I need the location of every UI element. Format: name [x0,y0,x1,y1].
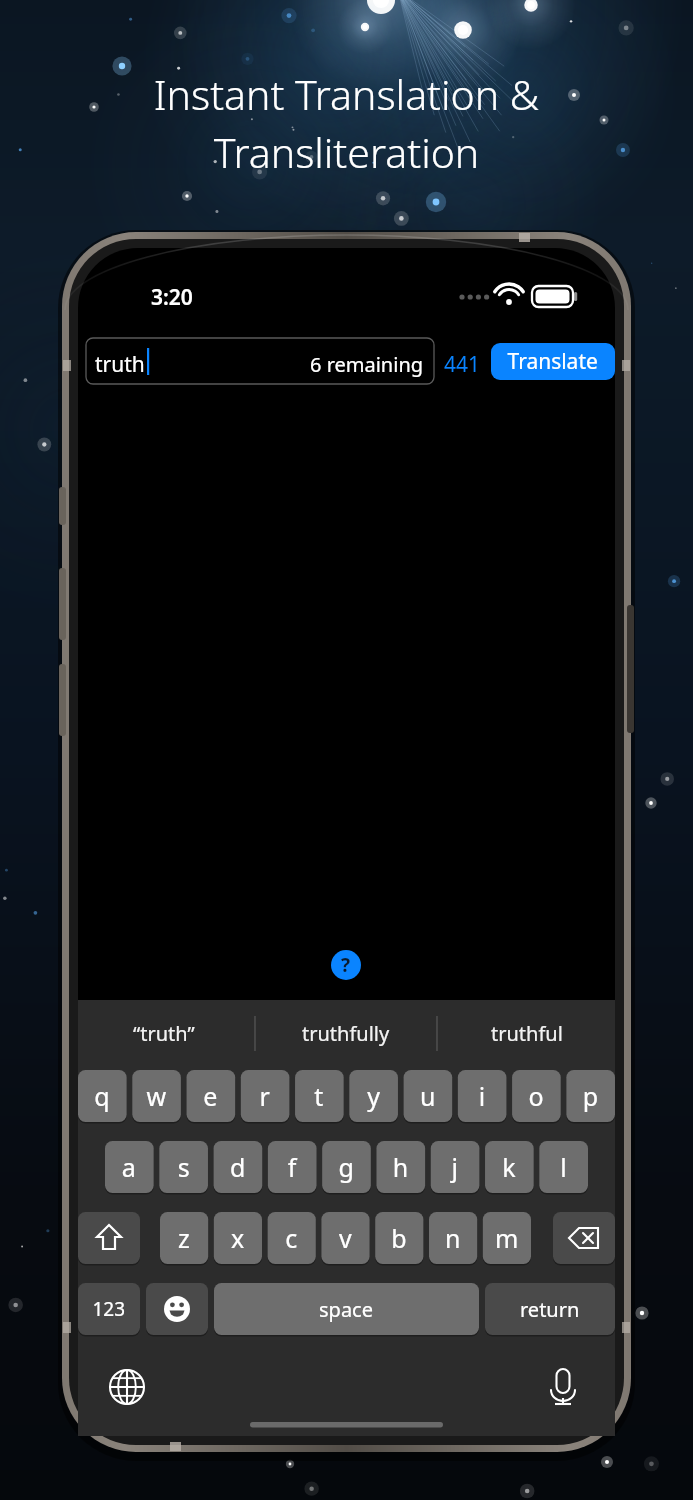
button[interactable]: Shift [78,1212,140,1264]
button[interactable] [255,1008,437,1058]
button[interactable]: Translate [491,343,615,380]
button[interactable]: Dictate [531,1362,595,1412]
button[interactable] [437,1008,615,1058]
button[interactable]: Help [331,950,361,980]
button[interactable] [485,1283,615,1335]
button[interactable]: Text to translate [86,338,434,384]
button[interactable]: Switch keyboard language [95,1362,159,1412]
button[interactable]: Emoji [146,1283,208,1335]
button[interactable] [78,1070,615,1122]
button[interactable]: Numbers and symbols [78,1283,140,1335]
button[interactable] [78,1008,255,1058]
button[interactable] [214,1283,479,1335]
button[interactable]: Backspace [553,1212,615,1264]
